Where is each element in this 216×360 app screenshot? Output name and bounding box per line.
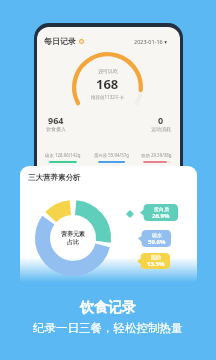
staticText: 脂肪 [151,254,161,260]
staticText: 0 [158,114,164,126]
staticText: 运动消耗 [151,126,171,132]
staticText: 脂肪 29.39/38g [141,152,172,158]
staticText: 纪录一日三餐，轻松控制热量 [33,321,183,335]
staticText: 每日记录 [44,36,76,46]
staticText: 碳水 128.06/142g [45,152,81,158]
staticText: 三大营养素分析 [28,173,81,182]
staticText: 2023-01-16 ▾ [134,38,167,45]
staticText: 964 [48,114,64,126]
staticText: 碳水 [152,232,162,238]
staticText: 饮食记录 [80,299,136,317]
staticText: 26.9% [152,212,170,220]
staticText: 蛋白质 [154,206,169,212]
staticText: 168 [96,75,119,93]
staticText: 推荐值1132千卡 [91,94,124,100]
staticText: 蛋白质 55.94/57g [94,152,129,158]
staticText: 营养元素 [61,230,85,238]
staticText: 13.5% [147,260,165,268]
staticText: 59.6% [148,238,166,246]
staticText: 还可以吃 [98,68,118,74]
staticText: 饮食摄入 [46,126,66,132]
staticText: 占比 [67,238,79,246]
